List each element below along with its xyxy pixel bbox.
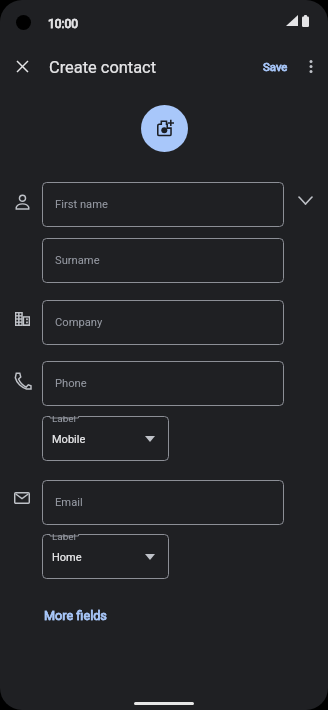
button[interactable]: More options: [297, 53, 324, 80]
staticText: Phone: [55, 377, 87, 390]
button[interactable]: More fields: [38, 604, 113, 627]
staticText: 10:00: [48, 17, 78, 31]
staticText: First name: [55, 198, 108, 211]
staticText: More fields: [44, 608, 107, 623]
button[interactable]: Surname: [42, 238, 284, 283]
staticText: Mobile: [52, 433, 86, 446]
staticText: Save: [263, 60, 288, 73]
button[interactable]: Phone: [42, 361, 284, 406]
staticText: Home: [52, 551, 82, 564]
button[interactable]: Save: [256, 53, 295, 79]
staticText: Surname: [55, 254, 100, 267]
staticText: More fields: [44, 608, 107, 623]
button[interactable]: Company: [42, 300, 284, 345]
staticText: Save: [263, 60, 288, 73]
staticText: Label: [52, 416, 76, 425]
button[interactable]: Label: [42, 534, 169, 579]
button[interactable]: Expand name fields: [291, 186, 319, 214]
button[interactable]: First name: [42, 182, 284, 227]
staticText: Email: [55, 496, 83, 509]
staticText: Label: [52, 534, 76, 543]
button[interactable]: Add contact photo: [141, 105, 188, 152]
button[interactable]: Close: [8, 52, 37, 81]
staticText: Create contact: [49, 58, 156, 77]
button[interactable]: Label: [42, 416, 169, 461]
staticText: 10:00: [48, 17, 78, 31]
button[interactable]: Email: [42, 480, 284, 525]
staticText: Company: [55, 316, 103, 329]
